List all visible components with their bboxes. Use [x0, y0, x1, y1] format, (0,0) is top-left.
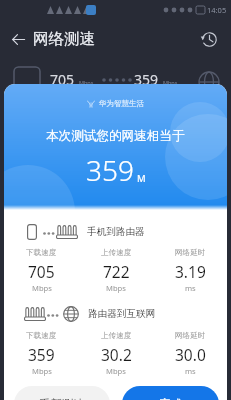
- staticText: Mbps: [79, 79, 94, 86]
- staticText: 14:05: [207, 5, 227, 15]
- staticText: 3.19: [175, 261, 206, 282]
- staticText: 359: [134, 70, 159, 89]
- staticText: 本次测试您的网速相当于: [46, 128, 185, 144]
- staticText: Mbps: [32, 366, 52, 376]
- staticText: 705: [50, 70, 75, 89]
- staticText: Mbps: [106, 366, 126, 376]
- staticText: 网络测速: [33, 29, 95, 49]
- staticText: 下载速度: [26, 331, 57, 341]
- staticText: ms: [185, 283, 196, 293]
- staticText: 上传速度: [101, 248, 132, 258]
- staticText: Mbps: [106, 283, 126, 293]
- staticText: 网络延时: [175, 248, 206, 258]
- staticText: 30.2: [101, 344, 132, 365]
- staticText: 手机到路由器: [87, 226, 145, 238]
- staticText: Mbps: [163, 79, 178, 86]
- button[interactable]: Back: [1, 22, 35, 56]
- staticText: 重新测速: [39, 397, 85, 400]
- staticText: 722: [103, 261, 130, 282]
- staticText: 下载速度: [26, 248, 57, 258]
- staticText: 网络延时: [175, 331, 206, 341]
- staticText: 路由器到互联网: [88, 308, 156, 320]
- staticText: 华为智慧生活: [99, 99, 144, 108]
- staticText: M: [137, 172, 146, 185]
- staticText: 完成: [159, 397, 182, 400]
- staticText: Mbps: [32, 283, 52, 293]
- button[interactable]: 重新测速: [14, 386, 110, 400]
- staticText: 705: [28, 261, 55, 282]
- staticText: ms: [185, 366, 196, 376]
- button[interactable]: 完成: [122, 386, 219, 400]
- staticText: 上传速度: [101, 331, 132, 341]
- staticText: 359: [28, 344, 55, 365]
- staticText: 30.0: [175, 344, 206, 365]
- button[interactable]: History: [192, 22, 226, 56]
- staticText: 359: [86, 151, 134, 189]
